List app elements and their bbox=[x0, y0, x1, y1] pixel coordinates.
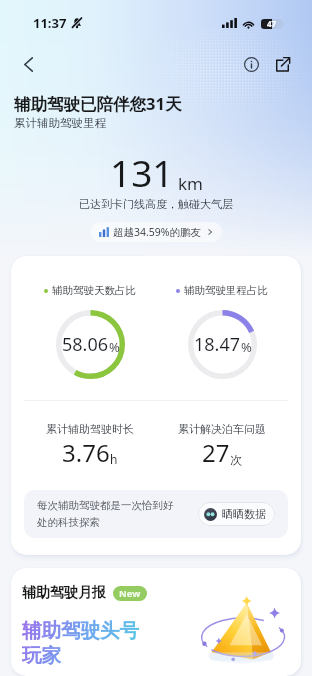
staticText: 18.47 bbox=[194, 332, 241, 357]
button[interactable]: Back bbox=[13, 49, 43, 79]
staticText: 累计辅助驾驶里程 bbox=[14, 116, 106, 130]
staticText: km bbox=[178, 172, 203, 195]
staticText: 已达到卡门线高度，触碰大气层 bbox=[14, 197, 298, 211]
staticText: 3.76 bbox=[62, 436, 110, 469]
staticText: % bbox=[241, 338, 252, 356]
staticText: % bbox=[109, 338, 120, 356]
button[interactable]: Share bbox=[267, 49, 297, 79]
staticText: 累计辅助驾驶时长 bbox=[46, 422, 134, 436]
staticText: 辅助驾驶天数占比 bbox=[52, 284, 136, 297]
button[interactable]: 超越34.59%的鹏友 bbox=[91, 222, 222, 242]
staticText: 58.06 bbox=[62, 332, 109, 357]
staticText: 47 bbox=[267, 18, 277, 29]
staticText: 辅助驾驶月报 bbox=[22, 584, 106, 602]
staticText: 辅助驾驶头号 玩家 bbox=[22, 618, 139, 668]
staticText: New bbox=[119, 587, 141, 600]
staticText: 27 bbox=[202, 436, 230, 469]
staticText: 累计解决泊车问题 bbox=[178, 422, 266, 436]
staticText: 辅助驾驶已陪伴您31天 bbox=[14, 92, 182, 115]
staticText: 超越34.59%的鹏友 bbox=[113, 225, 202, 239]
staticText: 每次辅助驾驶都是一次恰到好 处的科技探索 bbox=[37, 499, 198, 529]
staticText: 次 bbox=[230, 452, 242, 467]
staticText: h bbox=[110, 451, 118, 467]
button[interactable]: 辅助驾驶月报 bbox=[11, 568, 301, 676]
button[interactable]: 晒晒数据 bbox=[198, 502, 275, 526]
staticText: 11:37 bbox=[33, 14, 67, 32]
staticText: 131 bbox=[110, 147, 174, 197]
button[interactable]: Info bbox=[236, 49, 266, 79]
staticText: 辅助驾驶里程占比 bbox=[184, 284, 268, 297]
staticText: 晒晒数据 bbox=[222, 507, 266, 521]
